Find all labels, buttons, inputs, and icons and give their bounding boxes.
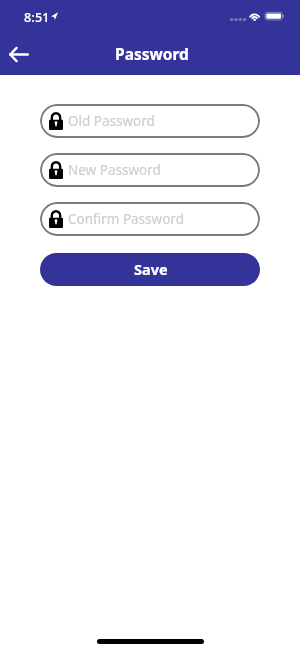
button[interactable]: Back — [0, 40, 38, 68]
button[interactable]: Old Password — [40, 104, 260, 138]
staticText: Password — [115, 43, 189, 64]
staticText: 8:51 — [24, 9, 50, 26]
button[interactable]: Save — [40, 253, 260, 286]
staticText: New Password — [68, 161, 161, 179]
button[interactable]: Confirm Password — [40, 202, 260, 236]
staticText: Old Password — [68, 112, 155, 130]
button[interactable]: New Password — [40, 153, 260, 187]
staticText: Save — [134, 259, 168, 279]
staticText: Confirm Password — [68, 210, 184, 228]
